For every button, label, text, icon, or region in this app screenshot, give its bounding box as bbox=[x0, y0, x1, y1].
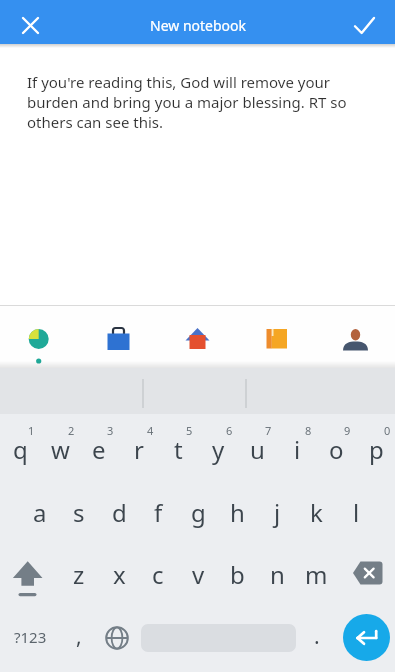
staticText: j bbox=[274, 496, 281, 529]
button[interactable]: k bbox=[296, 484, 336, 540]
button[interactable]: d bbox=[99, 484, 139, 540]
staticText: p bbox=[369, 433, 384, 466]
button[interactable] bbox=[158, 306, 237, 368]
button[interactable]: . bbox=[299, 612, 335, 660]
staticText: x bbox=[113, 558, 126, 591]
staticText: d bbox=[112, 496, 127, 529]
button[interactable]: , bbox=[61, 612, 97, 660]
button[interactable] bbox=[316, 306, 395, 368]
button[interactable]: c bbox=[138, 548, 178, 600]
button[interactable]: z bbox=[59, 548, 99, 600]
staticText: n bbox=[270, 558, 285, 591]
button[interactable]: x bbox=[99, 548, 139, 600]
staticText: a bbox=[33, 496, 47, 529]
button[interactable]: l bbox=[336, 484, 376, 540]
staticText: t bbox=[174, 433, 183, 466]
staticText: New notebook bbox=[150, 16, 246, 35]
button[interactable] bbox=[79, 306, 158, 368]
button[interactable]: a bbox=[20, 484, 60, 540]
button[interactable]: h bbox=[217, 484, 257, 540]
staticText: r bbox=[134, 433, 144, 466]
button[interactable]: r bbox=[119, 425, 159, 473]
staticText: If you're reading this, God will remove … bbox=[27, 72, 330, 92]
button[interactable] bbox=[0, 306, 79, 368]
button[interactable]: m bbox=[296, 548, 336, 600]
button[interactable] bbox=[95, 613, 139, 663]
staticText: b bbox=[230, 558, 245, 591]
staticText: 7 bbox=[265, 423, 272, 438]
staticText: s bbox=[73, 496, 85, 529]
staticText: o bbox=[329, 433, 344, 466]
staticText: c bbox=[152, 558, 164, 591]
staticText: q bbox=[13, 433, 28, 466]
staticText: 0 bbox=[384, 423, 391, 438]
button[interactable] bbox=[342, 5, 387, 45]
staticText: l bbox=[353, 496, 360, 529]
staticText: u bbox=[250, 433, 265, 466]
staticText: 1 bbox=[28, 423, 35, 438]
staticText: 5 bbox=[186, 423, 193, 438]
button[interactable]: f bbox=[138, 484, 178, 540]
button[interactable]: g bbox=[178, 484, 218, 540]
button[interactable]: b bbox=[217, 548, 257, 600]
staticText: z bbox=[73, 558, 85, 591]
staticText: 6 bbox=[226, 423, 233, 438]
staticText: others can see this. bbox=[27, 112, 164, 132]
staticText: h bbox=[230, 496, 245, 529]
button[interactable] bbox=[8, 5, 52, 46]
staticText: 8 bbox=[305, 423, 312, 438]
button[interactable] bbox=[343, 614, 390, 661]
button[interactable]: i bbox=[277, 425, 317, 473]
button[interactable]: o bbox=[316, 425, 356, 473]
staticText: k bbox=[310, 496, 323, 529]
button[interactable]: n bbox=[257, 548, 297, 600]
button[interactable]: j bbox=[257, 484, 297, 540]
button[interactable]: ?123 bbox=[2, 613, 58, 661]
staticText: f bbox=[154, 496, 163, 529]
button[interactable]: t bbox=[158, 425, 198, 473]
staticText: . bbox=[314, 622, 320, 651]
button[interactable] bbox=[237, 306, 316, 368]
staticText: g bbox=[191, 496, 206, 529]
button[interactable]: q bbox=[0, 425, 40, 473]
staticText: , bbox=[76, 622, 82, 651]
button[interactable] bbox=[343, 550, 391, 596]
button[interactable]: u bbox=[237, 425, 277, 473]
button[interactable]: e bbox=[79, 425, 119, 473]
staticText: burden and bring you a major blessing. R… bbox=[27, 92, 347, 112]
button[interactable]: s bbox=[59, 484, 99, 540]
staticText: y bbox=[212, 433, 225, 466]
button[interactable]: y bbox=[198, 425, 238, 473]
staticText: 4 bbox=[147, 423, 154, 438]
staticText: v bbox=[192, 558, 205, 591]
staticText: 2 bbox=[68, 423, 75, 438]
staticText: w bbox=[51, 433, 70, 466]
staticText: 3 bbox=[107, 423, 114, 438]
staticText: m bbox=[305, 558, 328, 591]
staticText: e bbox=[92, 433, 106, 466]
staticText: 9 bbox=[344, 423, 351, 438]
button[interactable]: v bbox=[178, 548, 218, 600]
button[interactable]: w bbox=[40, 425, 80, 473]
staticText: ?123 bbox=[14, 627, 47, 647]
staticText: i bbox=[294, 433, 301, 466]
button[interactable]: p bbox=[356, 425, 395, 473]
button[interactable] bbox=[6, 554, 50, 600]
